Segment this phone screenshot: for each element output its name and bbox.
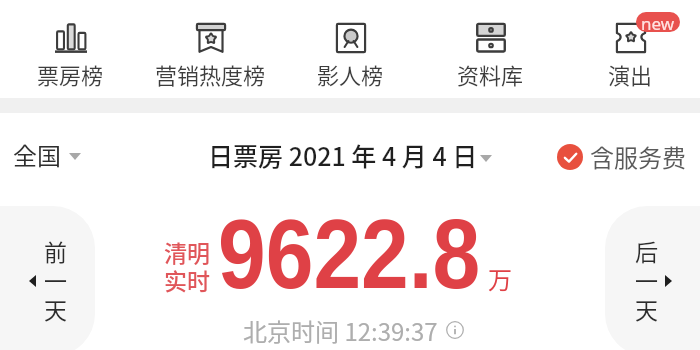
- staticText: 清明: [164, 235, 210, 268]
- staticText: 实时: [164, 263, 210, 296]
- button[interactable]: 后一天: [605, 206, 700, 350]
- staticText: 后: [635, 234, 658, 267]
- button[interactable]: 说明: [446, 321, 464, 339]
- button[interactable]: 影人榜: [317, 0, 384, 90]
- staticText: 9622.8: [218, 199, 480, 308]
- staticText: 一: [635, 263, 658, 296]
- staticText: 日票房 2021 年 4 月 4 日: [208, 137, 478, 173]
- staticText: 资料库: [457, 58, 524, 90]
- staticText: 前: [44, 234, 67, 267]
- button[interactable]: 日票房 2021 年 4 月 4 日: [208, 133, 492, 177]
- staticText: 影人榜: [317, 58, 384, 90]
- staticText: 天: [635, 292, 658, 325]
- staticText: 营销热度榜: [155, 58, 266, 90]
- staticText: 一: [44, 263, 67, 296]
- staticText: 含服务费: [590, 139, 686, 174]
- button[interactable]: 营销热度榜: [155, 0, 266, 90]
- staticText: 演出: [608, 58, 653, 90]
- button[interactable]: 票房榜: [37, 0, 104, 90]
- staticText: 票房榜: [37, 58, 104, 90]
- staticText: 天: [44, 292, 67, 325]
- button[interactable]: 资料库: [457, 0, 524, 90]
- button[interactable]: 含服务费: [557, 137, 686, 176]
- button[interactable]: 演出: [608, 0, 653, 90]
- staticText: 全国: [13, 137, 61, 172]
- staticText: 北京时间 12:39:37: [243, 313, 438, 348]
- staticText: 万: [488, 261, 512, 296]
- button[interactable]: 全国: [11, 133, 83, 176]
- staticText: new: [641, 12, 675, 32]
- button[interactable]: 前一天: [0, 206, 95, 350]
